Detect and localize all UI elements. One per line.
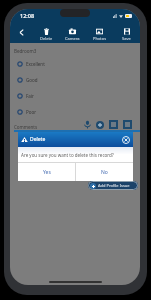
button[interactable]: Excellent [10,56,140,72]
staticText: Delete [40,36,53,41]
staticText: 12:08 [20,12,35,19]
button[interactable]: Voice input [83,120,92,129]
staticText: Are you sure you want to delete this rec… [21,152,114,158]
button[interactable]: Save [113,22,140,43]
staticText: No [101,169,108,176]
button[interactable]: Yes [18,163,75,181]
button[interactable]: Back [10,22,33,43]
staticText: Save [122,36,131,41]
staticText: Add Profile Issue [98,183,130,188]
staticText: Photos [93,36,107,41]
staticText: Camera [65,36,80,41]
staticText: Fair [26,93,34,99]
button[interactable]: Close [122,136,130,144]
staticText: Good [26,77,38,83]
staticText: Poor [26,109,37,115]
button[interactable]: Good [10,72,140,88]
button[interactable]: Photos [86,22,113,43]
staticText: Comments [14,124,38,130]
staticText: Yes [43,169,51,176]
staticText: Bedroom3 [14,48,37,54]
button[interactable]: Fair [10,88,140,104]
staticText: Excellent [26,61,45,67]
button[interactable]: Camera [59,22,86,43]
staticText: Delete [30,136,46,143]
button[interactable]: Add Profile Issue [88,181,138,190]
button[interactable]: Add [96,121,104,129]
button[interactable]: Poor [10,104,140,120]
button[interactable]: No [76,163,133,181]
button[interactable]: Delete [33,22,59,43]
